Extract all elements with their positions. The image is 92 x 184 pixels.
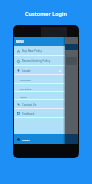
button[interactable]: Locate (14, 66, 65, 75)
button[interactable]: Hospitals (14, 75, 65, 84)
staticText: Renew Existing Policy (22, 59, 51, 63)
staticText: Hospitals (20, 78, 31, 81)
button[interactable]: MENU (14, 37, 65, 46)
staticText: Logout (22, 138, 30, 141)
button[interactable]: Buy New Policy (14, 46, 65, 56)
button[interactable]: Logout (14, 134, 65, 144)
staticText: BO Office (20, 87, 32, 90)
staticText: Feedback (22, 112, 35, 116)
staticText: Locate (22, 69, 31, 73)
button[interactable]: Contact Us (14, 100, 65, 109)
staticText: Agent (20, 95, 27, 98)
button[interactable]: Renew Existing Policy (14, 56, 65, 66)
button[interactable]: Agent (14, 92, 65, 100)
staticText: Customer Login (0, 10, 92, 17)
staticText: Buy New Policy (22, 49, 42, 53)
staticText: MENU (16, 40, 24, 44)
button[interactable]: BO Office (14, 84, 65, 92)
button[interactable]: Feedback (14, 109, 65, 118)
staticText: Contact Us (22, 103, 37, 107)
